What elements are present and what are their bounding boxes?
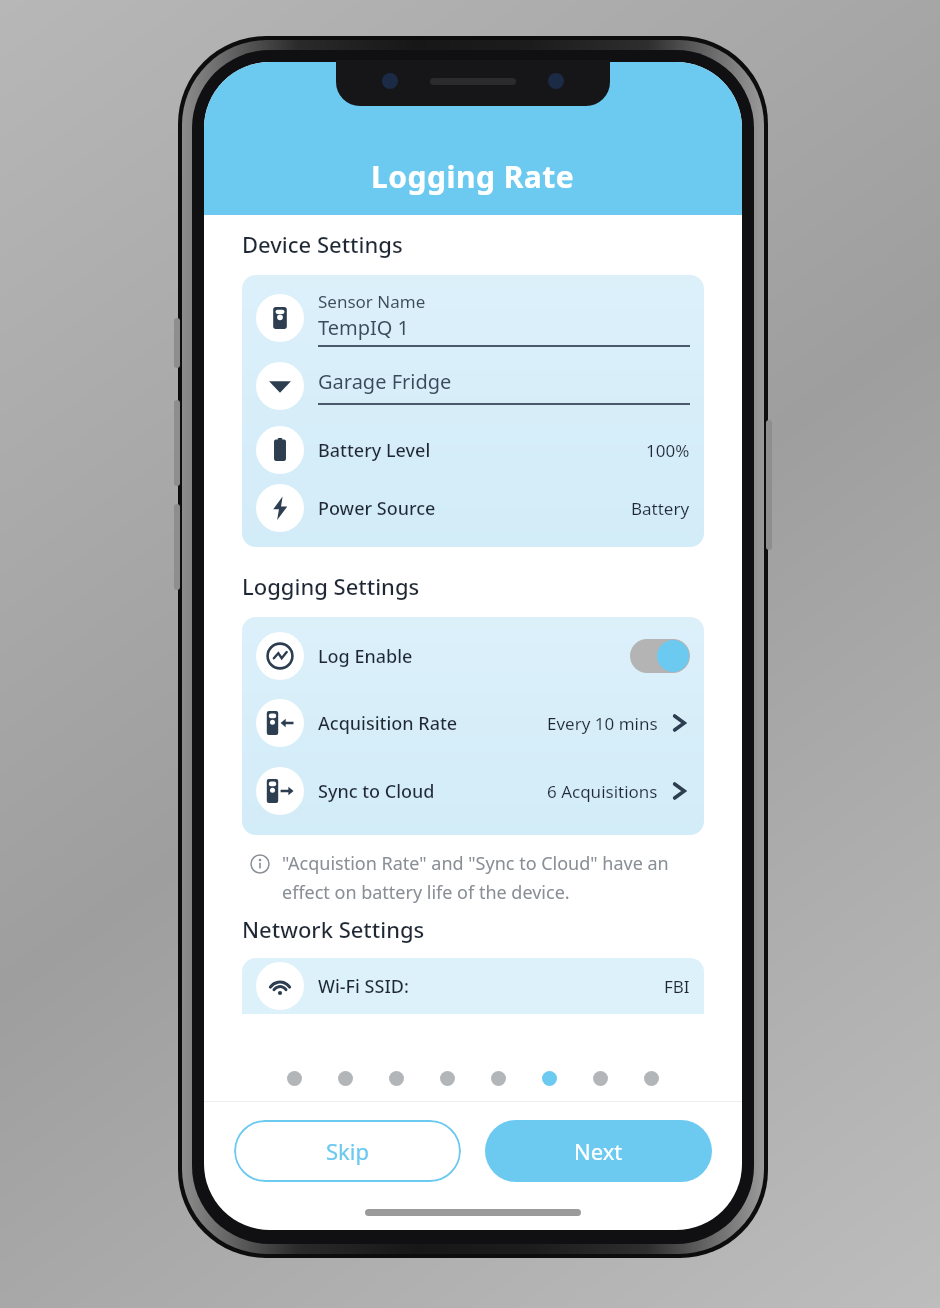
staticText: Wi-Fi SSID: [318, 974, 664, 999]
staticText: Sync to Cloud [318, 779, 547, 804]
staticText: Sensor Name [318, 290, 426, 313]
button[interactable]: Log Enable toggle [630, 639, 690, 673]
staticText: Battery Level [318, 438, 646, 463]
staticText: TempIQ 1 [318, 314, 410, 341]
staticText: Battery [631, 497, 690, 520]
button[interactable]: Acquisition Rate [256, 689, 690, 757]
button[interactable]: Power Source [256, 479, 690, 537]
button[interactable]: Garage Fridge [256, 351, 690, 421]
staticText: Acquisition Rate [318, 711, 547, 736]
staticText: "Acquistion Rate" and "Sync to Cloud" ha… [282, 851, 700, 904]
staticText: Device Settings [242, 229, 403, 259]
staticText: Network Settings [242, 914, 425, 944]
staticText: Next [574, 1136, 623, 1166]
staticText: Logging Rate [371, 156, 575, 197]
staticText: Skip [326, 1136, 370, 1166]
staticText: Log Enable [318, 644, 630, 669]
button[interactable]: Wi-Fi SSID: [256, 958, 690, 1014]
staticText: Every 10 mins [547, 712, 658, 735]
button[interactable]: Sync to Cloud [256, 757, 690, 825]
button[interactable]: Sensor Name [256, 285, 690, 351]
button[interactable]: Battery Level [256, 421, 690, 479]
staticText: Garage Fridge [318, 368, 452, 395]
staticText: 6 Acquisitions [547, 780, 658, 803]
staticText: 100% [646, 439, 690, 462]
staticText: FBI [664, 975, 690, 998]
staticText: Power Source [318, 496, 631, 521]
button[interactable]: Log Enable [256, 623, 690, 689]
button[interactable]: Next [485, 1120, 712, 1182]
staticText: Logging Settings [242, 571, 420, 601]
button[interactable]: Skip [234, 1120, 461, 1182]
